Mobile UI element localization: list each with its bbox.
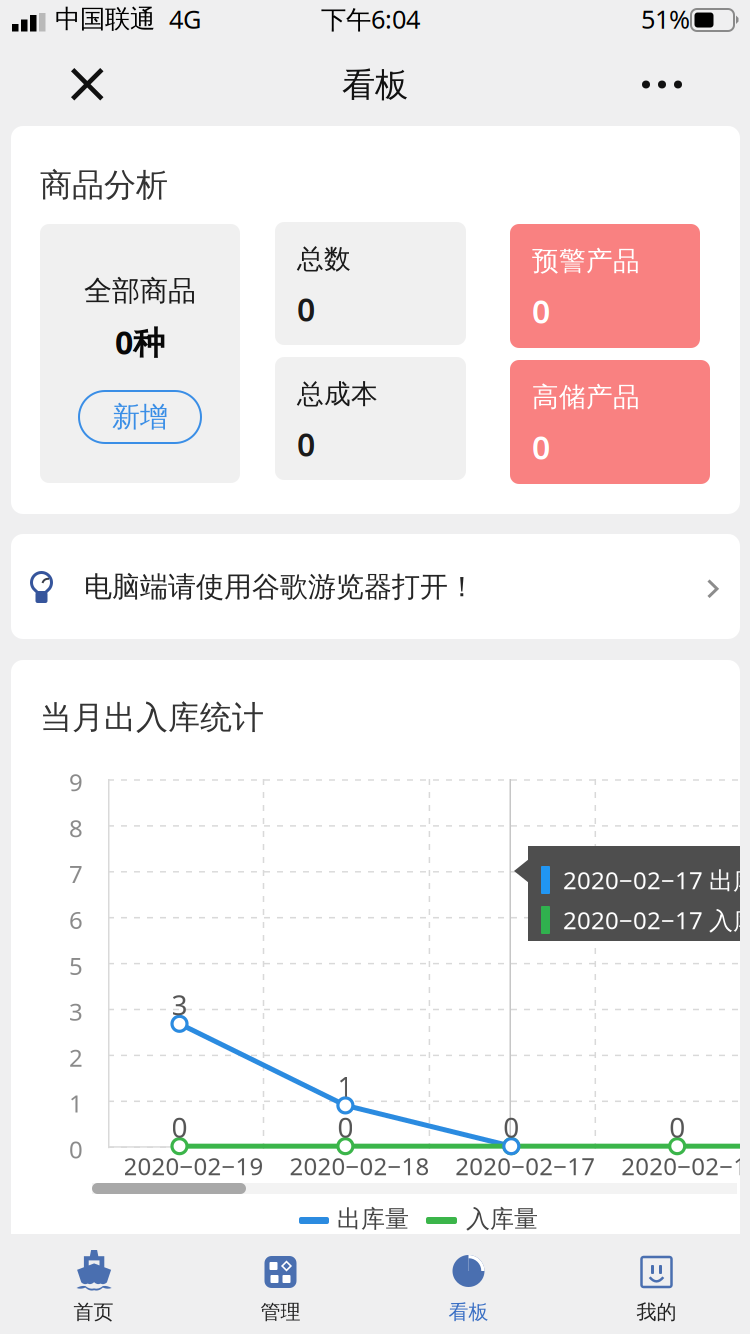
staticText: 4G — [169, 2, 201, 36]
button[interactable]: 关闭 — [53, 50, 122, 119]
staticText: 2020−02−19 — [123, 1150, 263, 1182]
button[interactable]: 新增 — [79, 391, 201, 443]
staticText: 2020−02−18 — [289, 1150, 429, 1182]
staticText: 商品分析 — [40, 165, 168, 205]
staticText: 5 — [69, 950, 83, 982]
button[interactable]: 电脑端请使用谷歌游览器打开！ — [11, 534, 740, 639]
button[interactable]: 管理 — [187, 1234, 374, 1334]
staticText: 51% — [641, 2, 690, 36]
staticText: 全部商品 — [84, 274, 196, 308]
staticText: 0 — [337, 1108, 353, 1145]
staticText: 0 — [532, 426, 550, 468]
staticText: 3 — [69, 996, 83, 1027]
button[interactable]: 我的 — [563, 1234, 750, 1334]
button[interactable]: 更多 — [624, 50, 700, 119]
staticText: 我的 — [636, 1300, 676, 1324]
button[interactable]: 首页 — [0, 1234, 187, 1334]
staticText: 3 — [171, 986, 187, 1023]
staticText: 8 — [69, 812, 83, 844]
button[interactable]: 总成本 — [275, 357, 466, 480]
staticText: 1 — [337, 1067, 353, 1105]
staticText: 看板 — [342, 64, 408, 105]
button[interactable]: 高储产品 — [510, 360, 710, 484]
staticText: 看板 — [448, 1300, 488, 1324]
staticText: 总数 — [297, 243, 351, 275]
staticText: 0种 — [115, 321, 165, 363]
staticText: 0 — [297, 288, 315, 330]
staticText: 电脑端请使用谷歌游览器打开！ — [84, 570, 476, 604]
staticText: 0 — [297, 423, 315, 465]
button[interactable]: 预警产品 — [510, 224, 700, 348]
staticText: 出库量 — [337, 1204, 409, 1234]
staticText: 7 — [69, 858, 83, 890]
button[interactable]: 看板 — [375, 1234, 562, 1334]
staticText: 下午6:04 — [321, 2, 420, 36]
staticText: 9 — [69, 766, 83, 798]
staticText: 0 — [69, 1133, 83, 1165]
staticText: 2020−02−17 — [455, 1150, 595, 1182]
staticText: 6 — [69, 904, 83, 936]
staticText: 0 — [171, 1108, 187, 1145]
staticText: 1 — [69, 1087, 83, 1119]
staticText: 首页 — [73, 1300, 113, 1324]
staticText: 中国联通 — [55, 3, 155, 34]
staticText: 总成本 — [297, 378, 378, 410]
staticText: 2 — [69, 1041, 83, 1073]
staticText: 0 — [503, 1108, 519, 1145]
staticText: 新增 — [112, 400, 168, 434]
button[interactable]: 总数 — [275, 222, 466, 345]
staticText: 0 — [532, 290, 550, 332]
staticText: 管理 — [260, 1300, 300, 1324]
staticText: 当月出入库统计 — [40, 698, 264, 737]
staticText: 高储产品 — [532, 381, 640, 413]
staticText: 预警产品 — [532, 245, 640, 277]
staticText: 0 — [669, 1108, 685, 1145]
staticText: 入库量 — [466, 1204, 538, 1234]
staticText: 2020−02−17 入库量 — [563, 904, 750, 936]
staticText: 2020−02−16 — [621, 1150, 750, 1182]
staticText: 2020−02−17 出库量 — [563, 864, 750, 896]
